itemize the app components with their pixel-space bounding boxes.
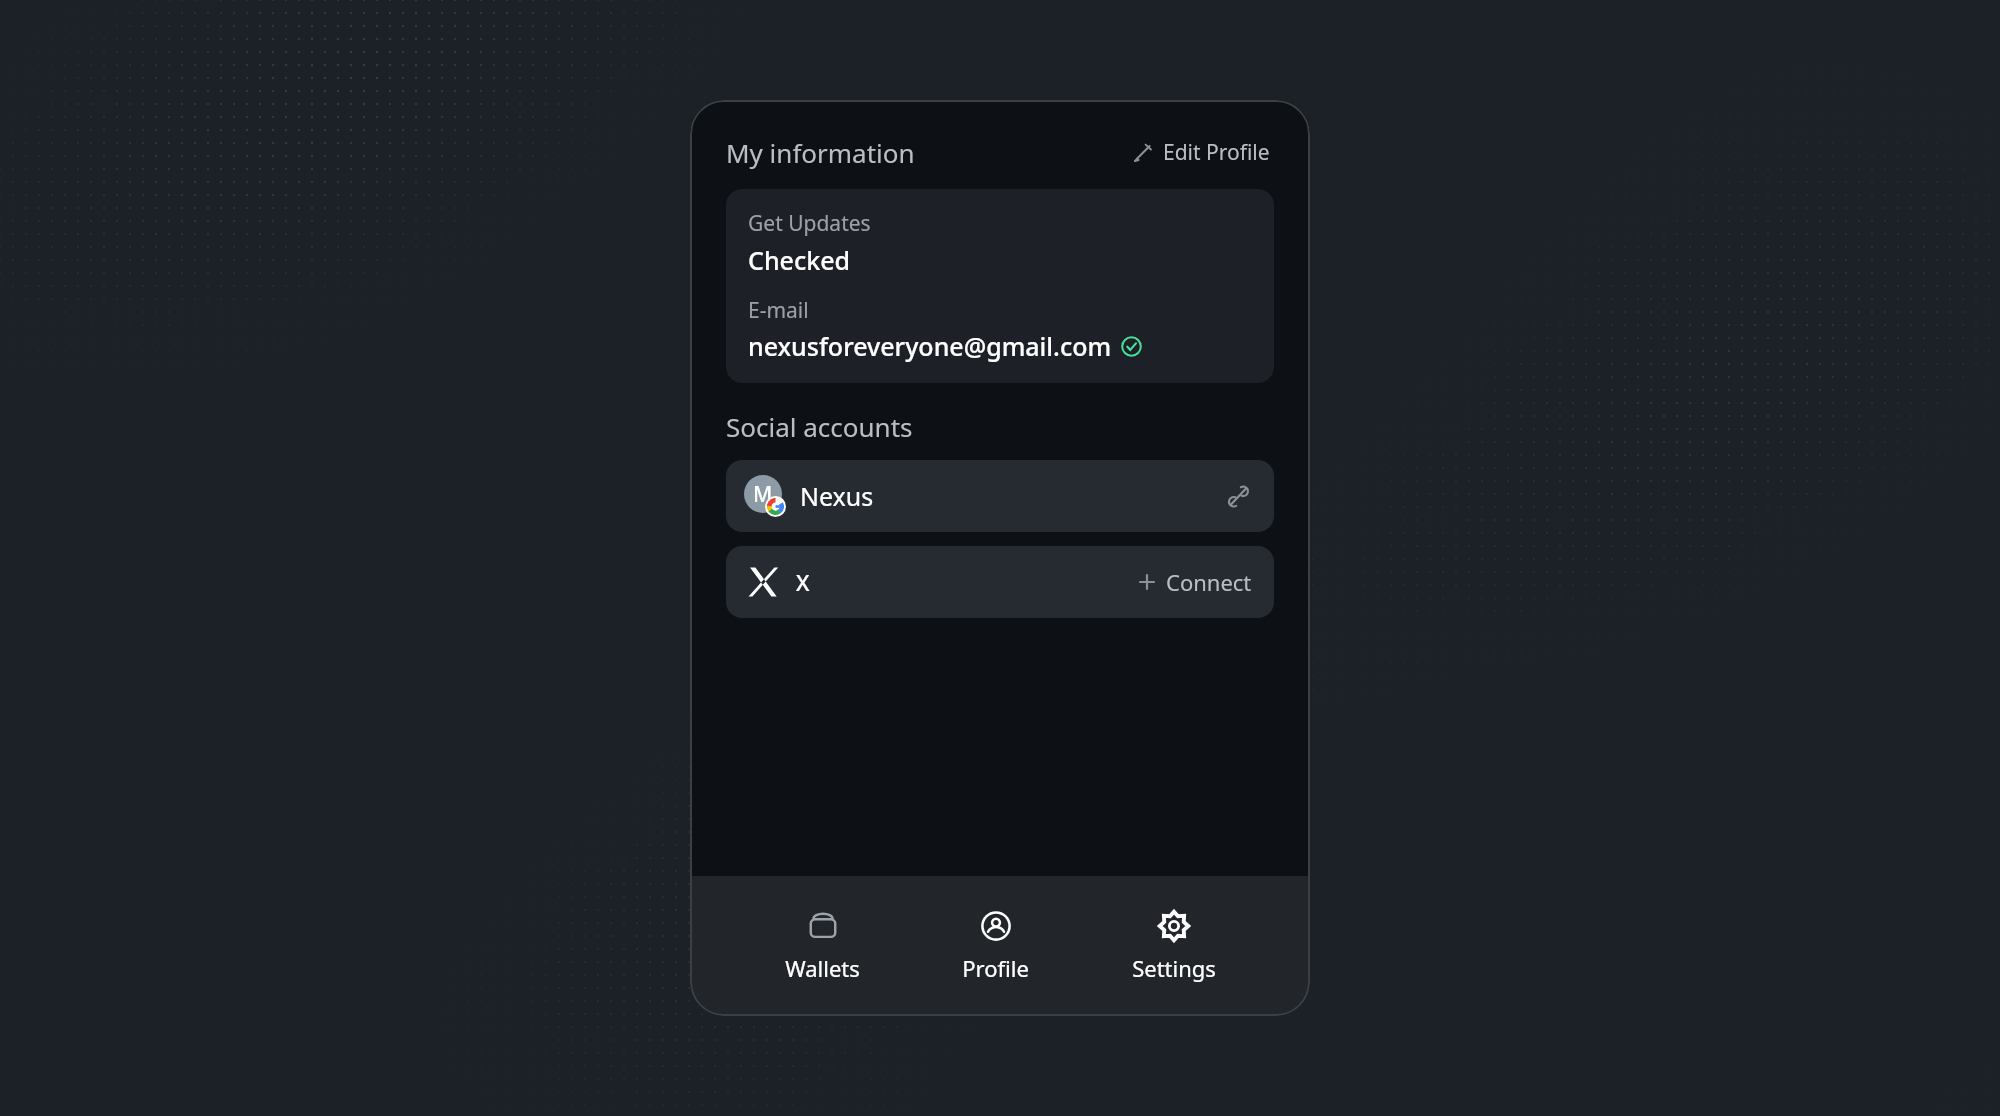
- staticText: Edit Profile: [1163, 138, 1270, 167]
- staticText: Nexus: [800, 479, 874, 513]
- button[interactable]: Connect: [1133, 563, 1256, 601]
- staticText: Profile: [962, 953, 1029, 983]
- button[interactable]: Wallets: [759, 903, 886, 989]
- button[interactable]: Get Updates: [726, 189, 1274, 383]
- staticText: Settings: [1132, 953, 1216, 983]
- staticText: Checked: [748, 243, 851, 277]
- staticText: Connect: [1166, 567, 1252, 597]
- staticText: My information: [726, 135, 915, 170]
- button[interactable]: Profile: [936, 903, 1055, 989]
- button[interactable]: Settings: [1106, 903, 1242, 989]
- staticText: M: [753, 480, 773, 509]
- staticText: E-mail: [748, 296, 809, 325]
- staticText: Social accounts: [726, 409, 913, 444]
- staticText: Get Updates: [748, 209, 871, 238]
- button[interactable]: Edit Profile: [1128, 134, 1274, 171]
- staticText: nexusforeveryone@gmail.com: [748, 329, 1112, 363]
- button[interactable]: X: [726, 546, 1274, 618]
- staticText: X: [796, 567, 810, 597]
- button[interactable]: Unlink Nexus account: [1221, 479, 1256, 514]
- staticText: Wallets: [785, 953, 860, 983]
- button[interactable]: M: [726, 460, 1274, 532]
